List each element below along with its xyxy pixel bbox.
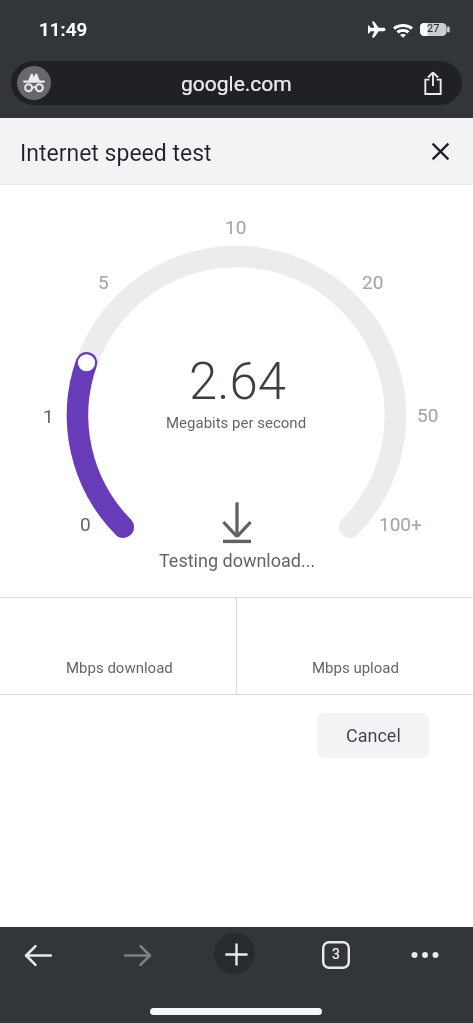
staticText: Mbps upload [312,659,399,677]
button[interactable]: Cancel [317,713,429,758]
button[interactable]: Back [14,931,62,979]
staticText: 50 [417,404,439,426]
staticText: 10 [225,216,247,238]
button[interactable]: Mbps download [0,598,236,694]
staticText: google.com [181,72,292,97]
staticText: 11:49 [39,18,88,40]
staticText: 20 [362,271,384,293]
button[interactable]: Close [420,131,461,172]
staticText: Cancel [346,725,401,746]
button[interactable]: Tabs [312,931,360,979]
staticText: 5 [98,271,109,293]
staticText: 100+ [379,513,422,535]
staticText: 2.64 [189,352,287,412]
staticText: Internet speed test [20,140,212,167]
button[interactable]: More options [401,931,449,979]
staticText: Megabits per second [166,414,307,432]
staticText: 27 [427,22,440,35]
button[interactable]: Forward [113,931,161,979]
staticText: Testing download... [159,550,316,571]
staticText: 3 [332,946,340,962]
other: Incognito [17,66,51,100]
staticText: 0 [80,513,91,535]
staticText: 1 [43,405,54,427]
button[interactable]: Mbps upload [237,598,473,694]
button[interactable]: Incognito [11,61,462,105]
button[interactable]: Share [415,65,451,101]
button[interactable]: New tab [214,933,255,974]
staticText: Mbps download [66,659,173,677]
